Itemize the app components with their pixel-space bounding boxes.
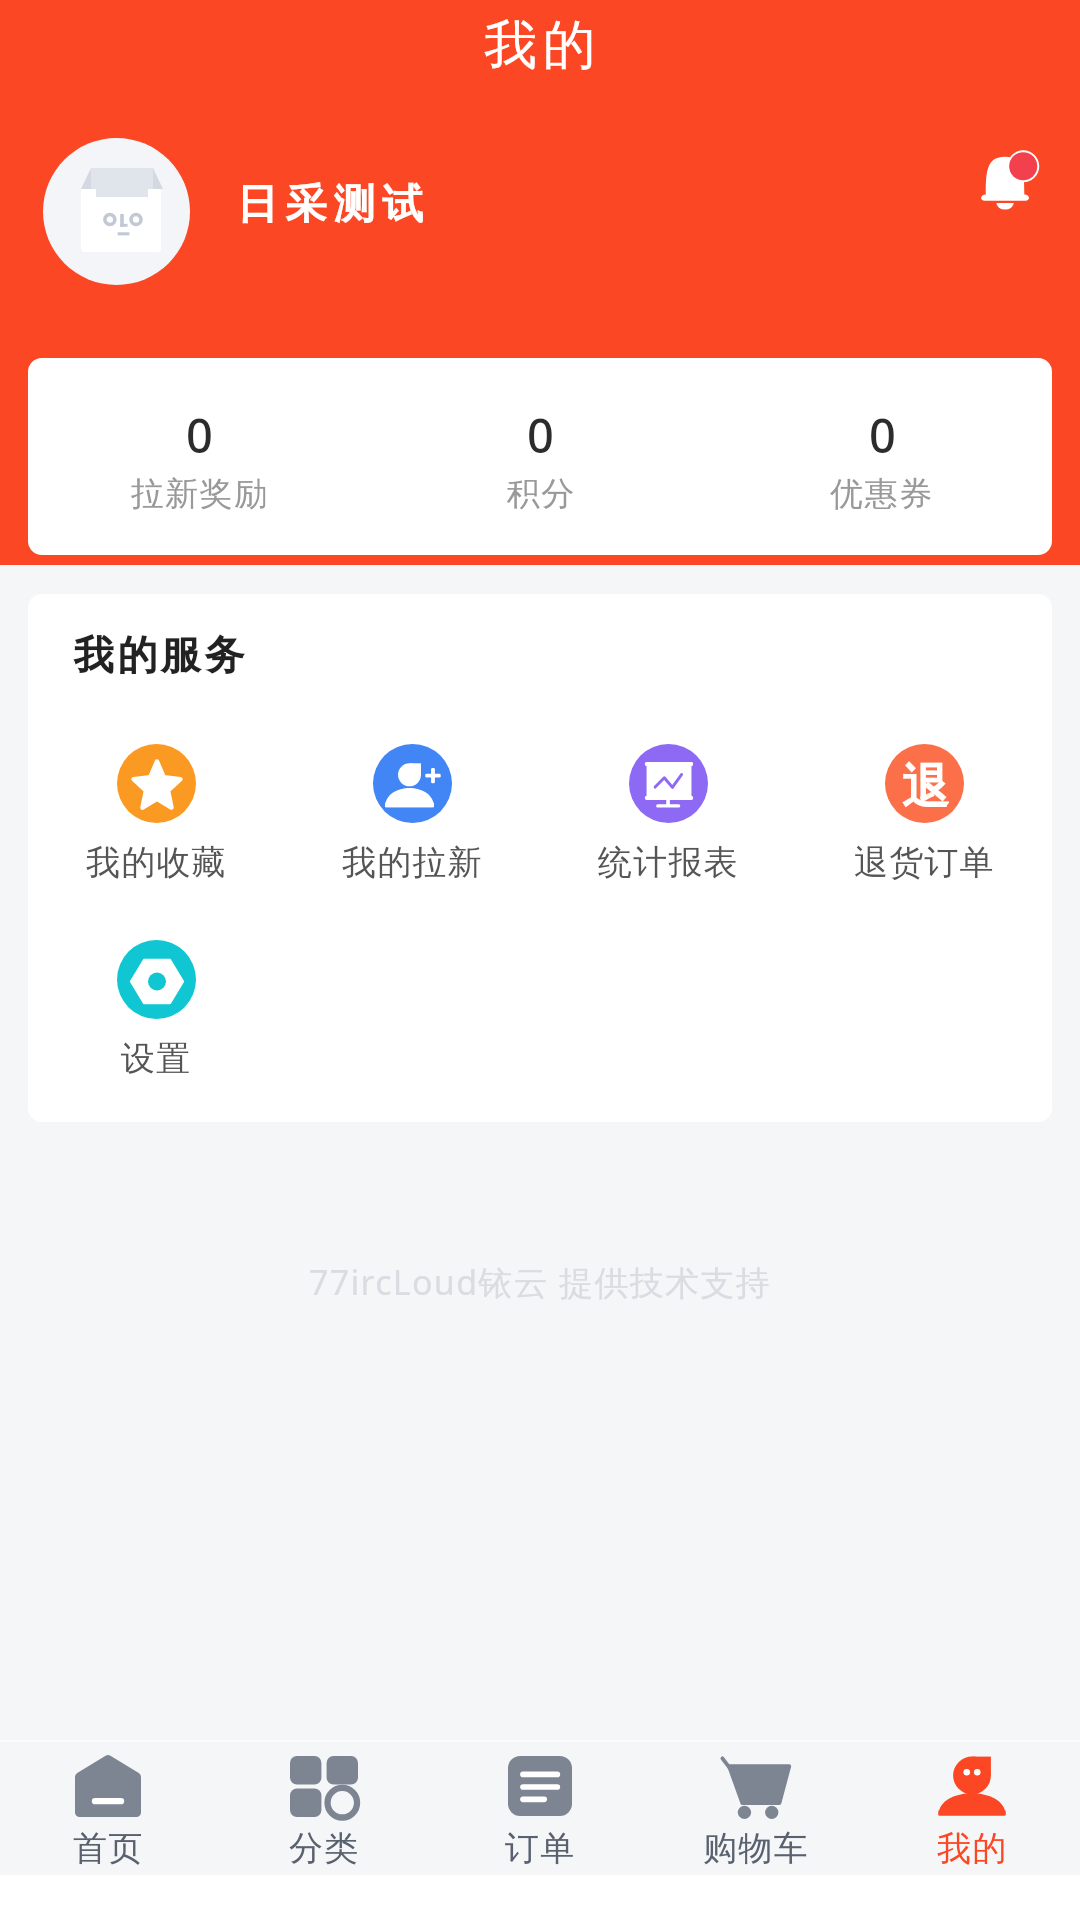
button[interactable]: 首页 <box>0 1742 216 1875</box>
button[interactable]: 购物车 <box>648 1742 864 1875</box>
staticText: 退 <box>902 758 949 810</box>
staticText: 购物车 <box>703 1827 809 1870</box>
staticText: 退货订单 <box>854 841 995 884</box>
button[interactable]: 我的拉新 <box>284 744 540 884</box>
button[interactable]: 分类 <box>216 1742 432 1875</box>
button[interactable]: 0 <box>711 358 1052 555</box>
staticText: 我的 <box>481 12 599 79</box>
staticText: 我的 <box>937 1827 1008 1870</box>
button[interactable]: 我的 <box>864 1742 1080 1875</box>
staticText: 分类 <box>289 1827 360 1870</box>
button[interactable]: 我的收藏 <box>28 744 284 884</box>
button[interactable]: 0 <box>370 358 711 555</box>
button[interactable]: 统计报表 <box>540 744 796 884</box>
button[interactable]: Notifications <box>966 138 1054 226</box>
staticText: 0 <box>186 403 213 467</box>
staticText: 首页 <box>73 1827 144 1870</box>
staticText: 我的收藏 <box>86 841 227 884</box>
staticText: 0 <box>869 403 896 467</box>
button[interactable]: 设置 <box>28 940 284 1080</box>
staticText: 订单 <box>505 1827 576 1870</box>
staticText: 日采测试 <box>233 179 427 231</box>
button[interactable]: 退 <box>796 744 1052 884</box>
button[interactable]: 0 <box>28 358 370 555</box>
button[interactable]: 订单 <box>432 1742 648 1875</box>
staticText: 统计报表 <box>598 841 739 884</box>
staticText: 设置 <box>121 1037 192 1080</box>
button[interactable]: Avatar <box>43 138 190 285</box>
staticText: 0 <box>527 403 554 467</box>
staticText: 我的服务 <box>72 630 246 680</box>
staticText: 拉新奖励 <box>130 473 268 515</box>
staticText: 77ircLoud铱云 提供技术支持 <box>309 1259 771 1305</box>
staticText: 优惠券 <box>830 473 934 515</box>
staticText: 我的拉新 <box>342 841 483 884</box>
staticText: 积分 <box>506 473 575 515</box>
